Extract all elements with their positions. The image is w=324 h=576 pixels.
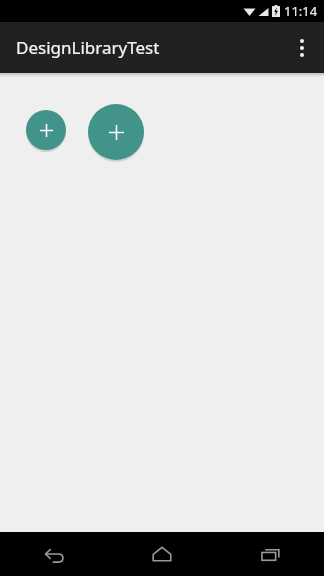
button[interactable]: More options <box>280 26 324 70</box>
button[interactable]: Add <box>88 104 144 160</box>
button[interactable]: Add <box>26 110 66 150</box>
staticText: 11:14 <box>284 2 318 20</box>
button[interactable]: Back <box>0 532 108 576</box>
button[interactable]: Recent apps <box>216 532 324 576</box>
staticText: DesignLibraryTest <box>16 36 160 59</box>
button[interactable]: Home <box>108 532 216 576</box>
